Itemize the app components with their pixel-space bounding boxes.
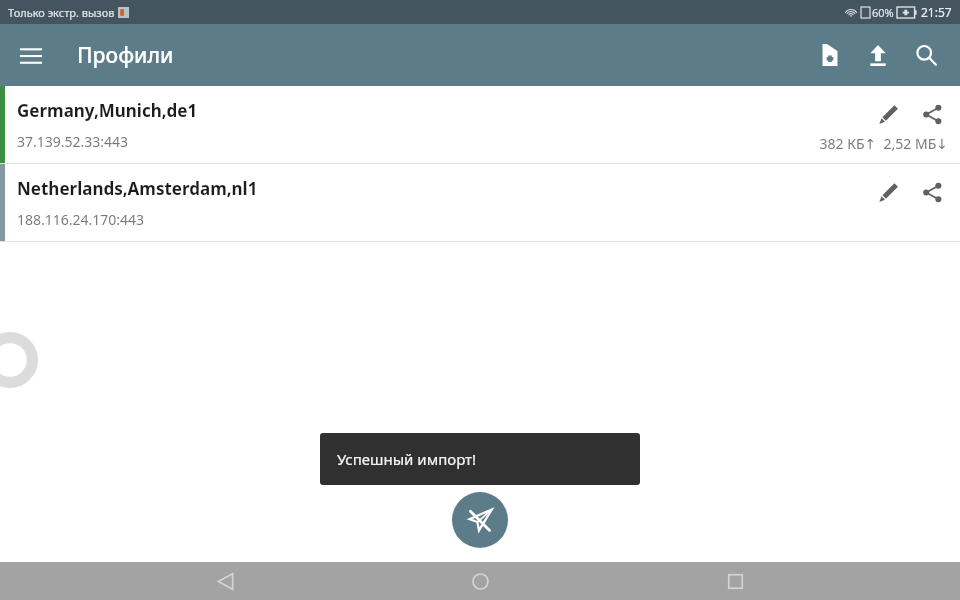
button[interactable]: Back	[195, 562, 255, 600]
button[interactable]: Netherlands,Amsterdam,nl1	[0, 164, 960, 241]
button[interactable]: Germany,Munich,de1	[0, 86, 960, 163]
staticText: Профили	[77, 41, 174, 70]
button[interactable]: Home	[450, 562, 510, 600]
staticText: 21:57	[921, 4, 952, 20]
staticText: 37.139.52.33:443	[17, 132, 129, 151]
staticText: 188.116.24.170:443	[17, 210, 145, 229]
button[interactable]: Edit profile	[866, 92, 910, 136]
button[interactable]: Open navigation drawer	[0, 24, 62, 86]
button[interactable]: Search	[902, 24, 950, 86]
button[interactable]: Edit profile	[866, 170, 910, 214]
button[interactable]: Share profile	[910, 92, 954, 136]
button[interactable]: Import	[854, 24, 902, 86]
button[interactable]: Recent apps	[705, 562, 765, 600]
button[interactable]: Add profile from file	[806, 24, 854, 86]
staticText: 382 КБ↑ 2,52 МБ↓	[819, 134, 948, 153]
staticText: Germany,Munich,de1	[17, 99, 198, 122]
staticText: 60%	[872, 5, 894, 20]
staticText: Только экстр. вызов	[8, 5, 115, 20]
button[interactable]: Share profile	[910, 170, 954, 214]
staticText: Успешный импорт!	[337, 449, 477, 469]
staticText: Netherlands,Amsterdam,nl1	[17, 177, 258, 200]
button[interactable]: Connect	[452, 492, 508, 548]
